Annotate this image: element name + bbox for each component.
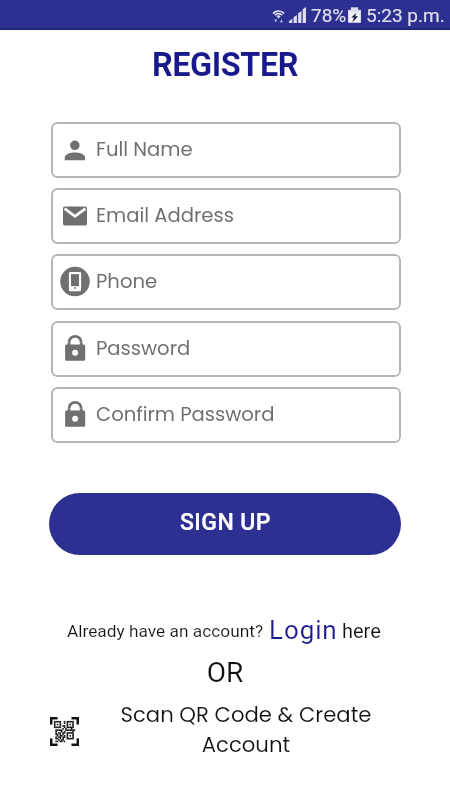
button[interactable]: SIGN UP <box>49 493 401 555</box>
button[interactable]: Full Name <box>51 122 401 178</box>
staticText: Full Name <box>96 135 193 162</box>
staticText: Login <box>269 615 338 645</box>
button[interactable]: Scan QR code <box>40 698 410 764</box>
staticText: REGISTER <box>0 46 450 84</box>
staticText: Email Address <box>96 201 234 228</box>
button[interactable]: Login <box>267 613 340 647</box>
staticText: 5:23 p.m. <box>366 4 445 26</box>
staticText: here <box>342 619 381 642</box>
staticText: OR <box>0 656 450 689</box>
button[interactable]: Confirm Password <box>51 387 401 443</box>
button[interactable]: Phone <box>51 254 401 310</box>
staticText: 78% <box>311 4 347 26</box>
other: Scan QR code <box>50 717 79 746</box>
staticText: Confirm Password <box>96 400 275 427</box>
button[interactable]: Password <box>51 321 401 377</box>
staticText: Scan QR Code & Create Account <box>120 700 372 759</box>
staticText: Phone <box>96 267 158 294</box>
staticText: SIGN UP <box>180 509 271 536</box>
button[interactable]: Email Address <box>51 188 401 244</box>
staticText: Already have an account? <box>67 621 264 641</box>
staticText: Password <box>96 334 191 361</box>
